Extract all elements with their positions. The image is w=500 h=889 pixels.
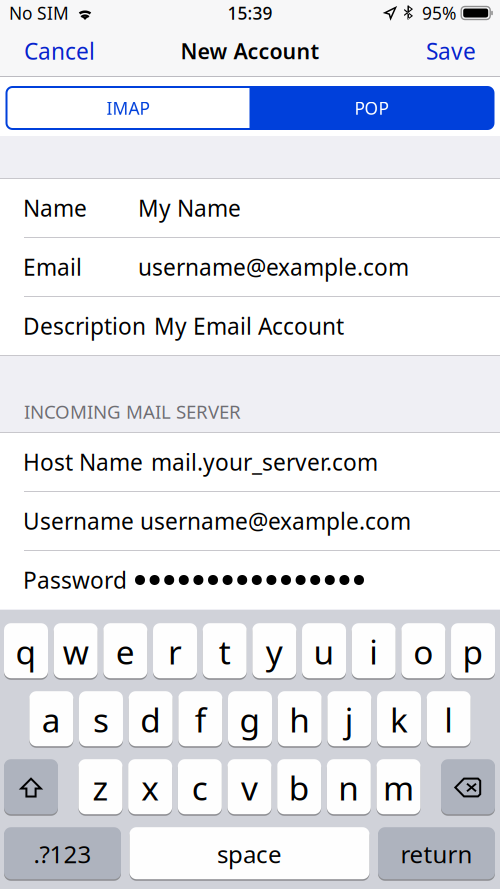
button[interactable]: POP — [249, 87, 493, 129]
staticText: My Email Account — [154, 311, 344, 341]
staticText: f — [195, 697, 206, 742]
button[interactable]: k — [377, 691, 421, 748]
button[interactable]: s — [79, 691, 123, 748]
button[interactable]: x — [128, 759, 172, 816]
staticText: b — [289, 765, 310, 810]
staticText: r — [168, 629, 182, 674]
staticText: New Account — [180, 37, 319, 65]
staticText: 95% — [422, 1, 456, 24]
button[interactable]: Host Name — [0, 433, 500, 491]
staticText: Description — [23, 311, 146, 341]
staticText: g — [239, 697, 260, 742]
button[interactable]: IMAP — [6, 87, 249, 129]
staticText: Email — [23, 252, 82, 282]
staticText: d — [140, 697, 161, 742]
staticText: z — [92, 765, 108, 810]
staticText: s — [93, 697, 109, 742]
button[interactable]: t — [203, 623, 247, 680]
staticText: Save — [426, 36, 476, 66]
button[interactable]: r — [153, 623, 197, 680]
staticText: q — [15, 629, 36, 674]
staticText: .?123 — [33, 838, 91, 870]
button[interactable]: Password — [0, 551, 500, 609]
staticText: j — [345, 697, 354, 742]
button[interactable]: Name — [0, 179, 500, 237]
staticText: y — [266, 629, 283, 674]
button[interactable]: Username — [0, 492, 500, 550]
staticText: Host Name — [23, 447, 143, 477]
button[interactable]: j — [327, 691, 371, 748]
staticText: IMAP — [106, 96, 149, 119]
button[interactable]: b — [277, 759, 321, 816]
button[interactable]: e — [103, 623, 147, 680]
staticText: space — [217, 838, 282, 870]
staticText: Password — [23, 565, 127, 595]
staticText: m — [383, 765, 414, 810]
button[interactable]: Delete — [441, 759, 495, 816]
staticText: No SIM — [9, 1, 69, 24]
staticText: h — [289, 697, 310, 742]
staticText: l — [444, 697, 453, 742]
staticText: username@example.com — [140, 506, 411, 536]
staticText: 15:39 — [227, 1, 272, 24]
staticText: x — [141, 765, 159, 810]
staticText: Cancel — [24, 36, 95, 66]
button[interactable]: w — [54, 623, 98, 680]
button[interactable]: g — [228, 691, 272, 748]
button[interactable]: u — [302, 623, 346, 680]
button[interactable]: y — [252, 623, 296, 680]
staticText: u — [313, 629, 334, 674]
button[interactable]: Shift — [4, 759, 58, 816]
button[interactable]: m — [376, 759, 420, 816]
button[interactable]: i — [352, 623, 396, 680]
staticText: c — [192, 765, 208, 810]
button[interactable]: z — [78, 759, 122, 816]
staticText: username@example.com — [138, 252, 409, 282]
button[interactable]: o — [401, 623, 445, 680]
staticText: p — [462, 629, 483, 674]
staticText: w — [63, 629, 89, 674]
staticText: n — [338, 765, 359, 810]
staticText: e — [116, 629, 135, 674]
button[interactable]: Save — [416, 26, 500, 76]
staticText: mail.your_server.com — [151, 447, 378, 477]
button[interactable]: a — [29, 691, 73, 748]
button[interactable]: l — [427, 691, 471, 748]
button[interactable]: q — [4, 623, 48, 680]
button[interactable]: f — [178, 691, 222, 748]
button[interactable]: p — [451, 623, 495, 680]
button[interactable]: Cancel — [0, 26, 105, 76]
button[interactable]: d — [129, 691, 173, 748]
button[interactable]: h — [278, 691, 322, 748]
staticText: My Name — [138, 193, 241, 223]
staticText: INCOMING MAIL SERVER — [24, 399, 241, 424]
staticText: POP — [354, 96, 388, 119]
button[interactable]: n — [327, 759, 371, 816]
staticText: Name — [23, 193, 87, 223]
button[interactable]: Description — [0, 297, 500, 355]
staticText: o — [413, 629, 433, 674]
staticText: a — [42, 697, 61, 742]
staticText: Username — [23, 506, 134, 536]
staticText: i — [369, 629, 378, 674]
button[interactable] — [129, 827, 369, 881]
button[interactable] — [4, 827, 121, 881]
button[interactable]: Email — [0, 238, 500, 296]
button[interactable] — [378, 827, 495, 881]
staticText: t — [219, 629, 231, 674]
button[interactable]: c — [178, 759, 222, 816]
button[interactable]: v — [227, 759, 271, 816]
staticText: k — [390, 697, 408, 742]
staticText: return — [400, 838, 472, 870]
staticText: v — [241, 765, 258, 810]
